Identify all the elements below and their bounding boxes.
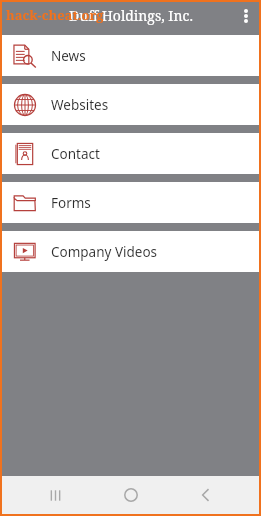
staticText: News bbox=[51, 47, 86, 65]
button[interactable]: News bbox=[2, 35, 259, 76]
button[interactable]: Home bbox=[109, 476, 153, 514]
staticText: Websites bbox=[51, 96, 109, 114]
button[interactable]: Back bbox=[184, 476, 228, 514]
button[interactable]: Websites bbox=[2, 84, 259, 125]
button[interactable]: Recents bbox=[33, 476, 77, 514]
staticText: Duff Holdings, Inc. bbox=[69, 6, 193, 25]
button[interactable]: Company Videos bbox=[2, 231, 259, 272]
button[interactable]: Forms bbox=[2, 182, 259, 223]
staticText: Contact bbox=[51, 145, 100, 163]
button[interactable]: More options bbox=[233, 2, 259, 29]
staticText: Forms bbox=[51, 194, 91, 212]
staticText: Company Videos bbox=[51, 243, 158, 261]
staticText: hack-cheat.org bbox=[6, 6, 104, 24]
button[interactable]: Contact bbox=[2, 133, 259, 174]
